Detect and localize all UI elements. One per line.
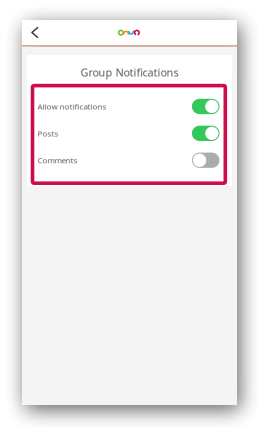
staticText: Posts [37, 128, 58, 139]
button[interactable]: Back [22, 20, 46, 45]
button[interactable]: Comments [27, 147, 232, 174]
button[interactable]: Allow notifications [27, 93, 232, 120]
staticText: Comments [37, 155, 77, 166]
staticText: Allow notifications [37, 101, 106, 112]
staticText: Group Notifications [80, 65, 178, 79]
button[interactable]: Posts [27, 120, 232, 147]
